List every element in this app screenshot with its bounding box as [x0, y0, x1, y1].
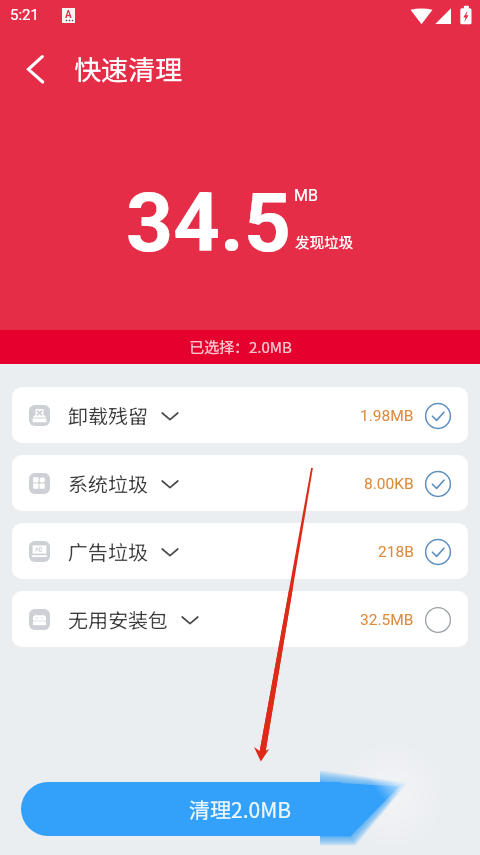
button[interactable]: 无用安装包 [12, 591, 468, 647]
button[interactable]: 清理2.0MB [0, 0, 480, 855]
staticText: 无用安装包 [68, 605, 168, 634]
staticText: 218B [378, 543, 414, 561]
staticText: 1.98MB [360, 407, 414, 425]
staticText: 已选择：2.0MB [189, 336, 292, 358]
staticText: 8.00KB [364, 475, 414, 493]
staticText: MB [294, 186, 318, 205]
staticText: 32.5MB [360, 611, 414, 629]
staticText: 清理2.0MB [189, 794, 291, 824]
staticText: 快速清理 [74, 49, 182, 88]
button[interactable]: 卸载残留 [12, 387, 468, 443]
staticText: A [65, 9, 72, 21]
button[interactable]: Back [14, 47, 58, 91]
staticText: 34.5 [126, 175, 291, 271]
staticText: 广告垃圾 [68, 537, 148, 566]
staticText: 系统垃圾 [68, 469, 148, 498]
staticText: 发现垃圾 [295, 231, 353, 252]
staticText: 5:21 [10, 6, 39, 24]
button[interactable]: 广告垃圾 [12, 523, 468, 579]
staticText: 卸载残留 [68, 401, 148, 430]
button[interactable]: 系统垃圾 [12, 455, 468, 511]
